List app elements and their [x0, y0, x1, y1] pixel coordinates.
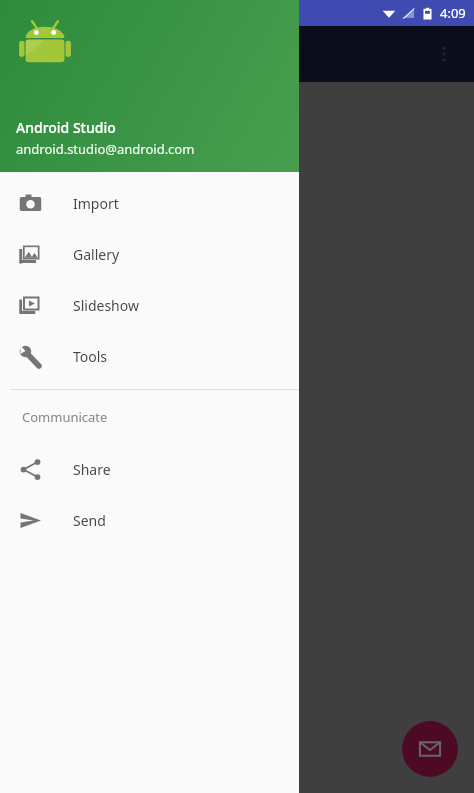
staticText: Share	[73, 460, 111, 479]
button[interactable]: Send	[0, 495, 299, 546]
button[interactable]: Import	[0, 178, 299, 229]
staticText: Slideshow	[73, 296, 139, 315]
staticText: Import	[73, 194, 119, 213]
staticText: 4:09	[440, 4, 466, 22]
staticText: Tools	[73, 347, 108, 366]
button[interactable]: Android Studio	[0, 0, 299, 172]
button[interactable]: Tools	[0, 331, 299, 382]
staticText: Send	[73, 511, 106, 530]
button[interactable]: Gallery	[0, 229, 299, 280]
button[interactable]: Share	[0, 444, 299, 495]
staticText: Gallery	[73, 245, 120, 264]
staticText: Android Studio	[16, 118, 116, 137]
button[interactable]: Compose email	[402, 721, 458, 777]
button[interactable]: Slideshow	[0, 280, 299, 331]
staticText: android.studio@android.com	[16, 140, 195, 158]
staticText: Communicate	[22, 408, 108, 426]
